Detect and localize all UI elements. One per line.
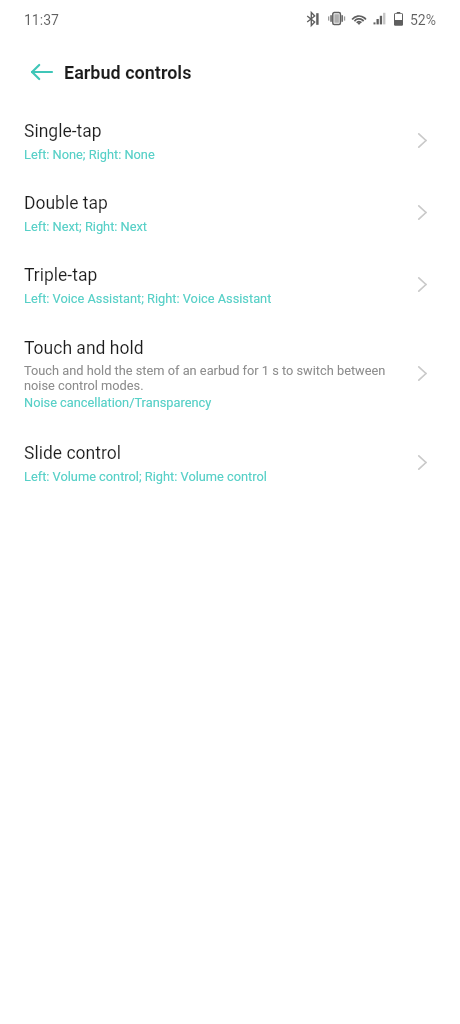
staticText: 11:37 [24, 12, 59, 28]
staticText: Double tap [24, 193, 108, 214]
staticText: Left: Voice Assistant; Right: Voice Assi… [24, 291, 272, 306]
staticText: Left: None; Right: None [24, 147, 155, 162]
button[interactable]: Triple-tap [0, 259, 460, 321]
button[interactable]: Touch and hold [0, 332, 460, 427]
button[interactable]: Single-tap [0, 115, 460, 177]
button[interactable]: Slide control [0, 437, 460, 499]
staticText: 52% [410, 12, 436, 28]
staticText: Triple-tap [24, 265, 98, 286]
staticText: Single-tap [24, 121, 102, 142]
staticText: Left: Volume control; Right: Volume cont… [24, 469, 267, 484]
button[interactable]: Back [0, 44, 64, 100]
button[interactable]: Double tap [0, 187, 460, 249]
staticText: Left: Next; Right: Next [24, 219, 148, 234]
staticText: Slide control [24, 443, 121, 464]
staticText: Touch and hold the stem of an earbud for… [24, 363, 386, 393]
staticText: Touch and hold [24, 338, 144, 359]
staticText: Noise cancellation/Transparency [24, 395, 212, 410]
staticText: Earbud controls [64, 62, 192, 83]
